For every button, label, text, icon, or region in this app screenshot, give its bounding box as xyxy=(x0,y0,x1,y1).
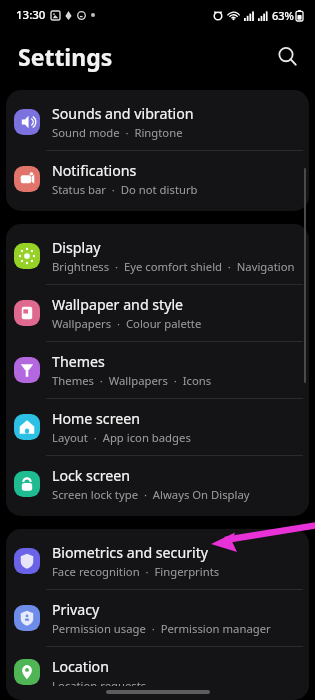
button[interactable]: Location xyxy=(6,647,309,696)
button[interactable]: Sounds and vibration xyxy=(6,94,309,150)
staticText: 63% xyxy=(272,8,294,23)
button[interactable]: Home screen xyxy=(6,399,309,455)
staticText: Display xyxy=(52,238,101,257)
button[interactable]: Display xyxy=(6,228,309,284)
staticText: 13:30 xyxy=(16,7,46,23)
staticText: Screen lock type · Always On Display xyxy=(52,487,250,502)
button[interactable]: Privacy xyxy=(6,590,309,646)
button[interactable]: Themes xyxy=(6,342,309,398)
staticText: Themes · Wallpapers · Icons xyxy=(52,373,212,388)
staticText: Location requests xyxy=(52,678,147,686)
staticText: Notifications xyxy=(52,161,137,180)
staticText: Face recognition · Fingerprints xyxy=(52,564,220,579)
staticText: Location xyxy=(52,657,109,676)
staticText: Wallpaper and style xyxy=(52,295,184,314)
staticText: Privacy xyxy=(52,600,100,619)
staticText: Permission usage · Permission manager xyxy=(52,621,271,636)
staticText: Status bar · Do not disturb xyxy=(52,182,198,197)
button[interactable]: Wallpaper and style xyxy=(6,285,309,341)
button[interactable]: Biometrics and security xyxy=(6,533,309,589)
staticText: Sounds and vibration xyxy=(52,104,194,123)
button[interactable]: Search xyxy=(270,39,304,73)
staticText: Biometrics and security xyxy=(52,543,209,562)
staticText: Brightness · Eye comfort shield · Naviga… xyxy=(52,259,299,274)
staticText: Layout · App icon badges xyxy=(52,430,191,445)
staticText: Settings xyxy=(18,41,113,72)
button[interactable]: Notifications xyxy=(6,151,309,207)
staticText: Wallpapers · Colour palette xyxy=(52,316,202,331)
staticText: Themes xyxy=(52,352,105,371)
staticText: Sound mode · Ringtone xyxy=(52,125,183,140)
button[interactable]: Lock screen xyxy=(6,456,309,512)
staticText: Lock screen xyxy=(52,466,131,485)
staticText: Home screen xyxy=(52,409,141,428)
